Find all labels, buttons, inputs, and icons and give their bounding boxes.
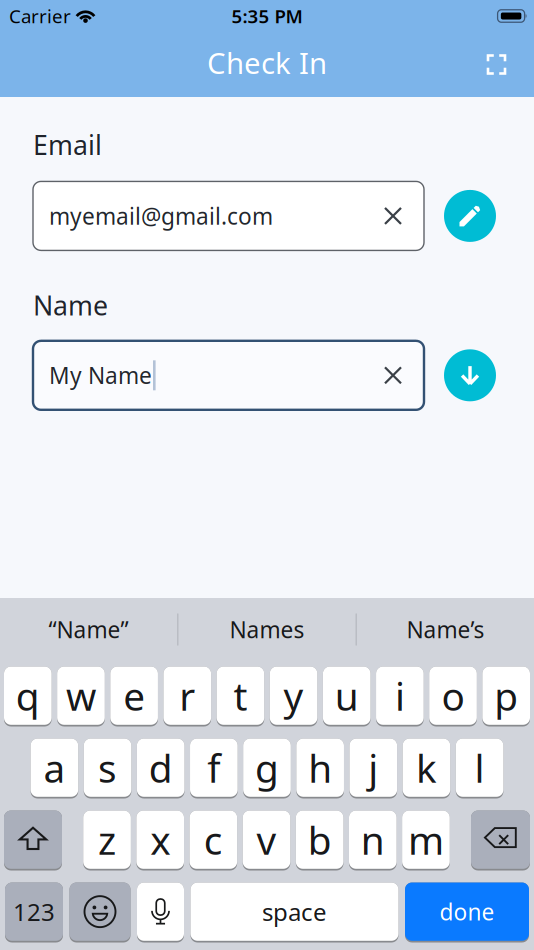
button[interactable]: c xyxy=(189,810,237,870)
button[interactable]: k xyxy=(403,738,450,798)
button[interactable]: h xyxy=(296,738,344,798)
button[interactable]: b xyxy=(296,810,343,870)
staticText: u xyxy=(335,670,359,721)
staticText: “Name” xyxy=(49,614,129,644)
button[interactable]: r xyxy=(163,666,211,726)
button[interactable]: Enter fullscreen xyxy=(478,45,515,83)
staticText: l xyxy=(475,742,485,793)
button[interactable]: Delete xyxy=(471,810,530,870)
button[interactable]: Clear text xyxy=(377,359,409,391)
button[interactable]: o xyxy=(429,666,477,726)
staticText: Name xyxy=(33,287,108,323)
staticText: y xyxy=(284,670,304,721)
button[interactable]: y xyxy=(270,666,317,726)
button[interactable]: m xyxy=(402,810,450,870)
staticText: c xyxy=(204,814,223,865)
staticText: Name’s xyxy=(406,614,484,644)
button[interactable]: Dictate xyxy=(137,882,184,942)
staticText: j xyxy=(368,742,378,793)
staticText: d xyxy=(149,742,173,793)
staticText: i xyxy=(395,670,405,721)
staticText: 5:35 PM xyxy=(231,4,302,28)
button[interactable]: w xyxy=(57,666,105,726)
button[interactable]: 123 xyxy=(5,882,63,942)
staticText: g xyxy=(255,742,279,793)
staticText: Names xyxy=(229,614,304,644)
staticText: Check In xyxy=(207,43,327,82)
staticText: v xyxy=(256,814,276,865)
button[interactable]: u xyxy=(323,666,371,726)
staticText: x xyxy=(150,814,170,865)
staticText: t xyxy=(233,670,247,721)
staticText: f xyxy=(207,742,220,793)
staticText: k xyxy=(416,742,437,793)
staticText: a xyxy=(43,742,65,793)
staticText: q xyxy=(16,670,40,721)
button[interactable]: t xyxy=(217,666,264,726)
staticText: s xyxy=(98,742,117,793)
button[interactable]: Shift xyxy=(4,810,62,870)
button[interactable]: e xyxy=(110,666,158,726)
button[interactable]: d xyxy=(137,738,184,798)
staticText: z xyxy=(98,814,116,865)
button[interactable]: i xyxy=(376,666,424,726)
staticText: e xyxy=(123,670,145,721)
button[interactable]: Edit email xyxy=(444,190,496,242)
button[interactable]: v xyxy=(243,810,290,870)
button[interactable]: myemail@gmail.com xyxy=(33,181,424,250)
button[interactable]: g xyxy=(243,738,291,798)
button[interactable]: l xyxy=(456,738,503,798)
button[interactable]: Name’s xyxy=(357,614,534,644)
staticText: w xyxy=(66,670,96,721)
button[interactable]: My Name xyxy=(33,341,424,410)
button[interactable]: “Name” xyxy=(0,614,177,644)
staticText: n xyxy=(361,814,385,865)
staticText: b xyxy=(308,814,332,865)
button[interactable]: z xyxy=(83,810,131,870)
button[interactable]: a xyxy=(31,738,78,798)
button[interactable]: s xyxy=(84,738,131,798)
staticText: r xyxy=(179,670,195,721)
button[interactable]: Names xyxy=(178,614,356,644)
staticText: My Name xyxy=(49,360,152,390)
staticText: m xyxy=(408,814,444,865)
button[interactable]: n xyxy=(349,810,397,870)
button[interactable]: q xyxy=(4,666,52,726)
staticText: o xyxy=(441,670,464,721)
staticText: myemail@gmail.com xyxy=(49,201,273,231)
staticText: Email xyxy=(33,127,102,162)
staticText: h xyxy=(308,742,332,793)
button[interactable]: f xyxy=(190,738,238,798)
button[interactable]: Submit name xyxy=(444,349,496,401)
button[interactable]: space xyxy=(190,882,398,942)
button[interactable]: Emoji xyxy=(69,882,130,942)
staticText: done xyxy=(439,897,494,927)
staticText: p xyxy=(494,670,518,721)
button[interactable]: done xyxy=(405,882,529,942)
button[interactable]: x xyxy=(136,810,184,870)
staticText: 123 xyxy=(13,896,55,928)
staticText: Carrier xyxy=(9,4,71,28)
staticText: space xyxy=(262,896,327,928)
button[interactable]: j xyxy=(349,738,397,798)
button[interactable]: Clear text xyxy=(377,200,409,232)
button[interactable]: p xyxy=(482,666,530,726)
